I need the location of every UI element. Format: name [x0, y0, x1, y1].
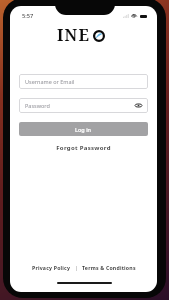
staticText: INE	[57, 24, 91, 46]
staticText: |	[71, 264, 82, 271]
button[interactable]: Terms & Conditions	[82, 264, 136, 271]
button[interactable]: Forgot Password	[10, 144, 157, 152]
button[interactable]: Log in	[19, 122, 148, 136]
other: Show password	[135, 102, 142, 109]
staticText: Password	[25, 102, 50, 109]
staticText: Log in	[75, 126, 92, 133]
staticText: Username or Email	[25, 78, 75, 85]
button[interactable]: Privacy Policy	[32, 264, 71, 271]
button[interactable]: Username or Email	[19, 74, 148, 89]
button[interactable]: Password	[19, 98, 148, 113]
staticText: 5:57	[22, 12, 34, 20]
